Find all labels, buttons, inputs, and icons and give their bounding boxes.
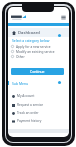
staticText: Other [16, 55, 25, 59]
button[interactable]: Payment history [12, 117, 66, 125]
staticText: Sub Menu [12, 81, 29, 86]
button[interactable]: Continue [11, 68, 64, 75]
button[interactable]: Modify an existing service [11, 49, 61, 54]
button[interactable]: Logo [11, 14, 26, 21]
button[interactable]: My Account [12, 92, 66, 100]
staticText: Select a category below [12, 38, 50, 43]
staticText: Apply for a new service [16, 45, 51, 49]
staticText: Request a service [17, 103, 44, 107]
staticText: Track an order [17, 111, 39, 115]
staticText: Continue [30, 69, 45, 74]
staticText: Modify an existing service [16, 50, 55, 54]
button[interactable]: Dashboard [12, 28, 66, 37]
button[interactable]: Track an order [12, 109, 66, 117]
button[interactable]: Apply for a new service [11, 44, 61, 49]
button[interactable]: Menu [61, 15, 66, 20]
button[interactable]: Request a service [12, 101, 66, 109]
staticText: My Account [17, 94, 35, 98]
staticText: Payment history [17, 119, 42, 123]
staticText: Dashboard [18, 30, 40, 36]
button[interactable]: Other [11, 54, 61, 59]
